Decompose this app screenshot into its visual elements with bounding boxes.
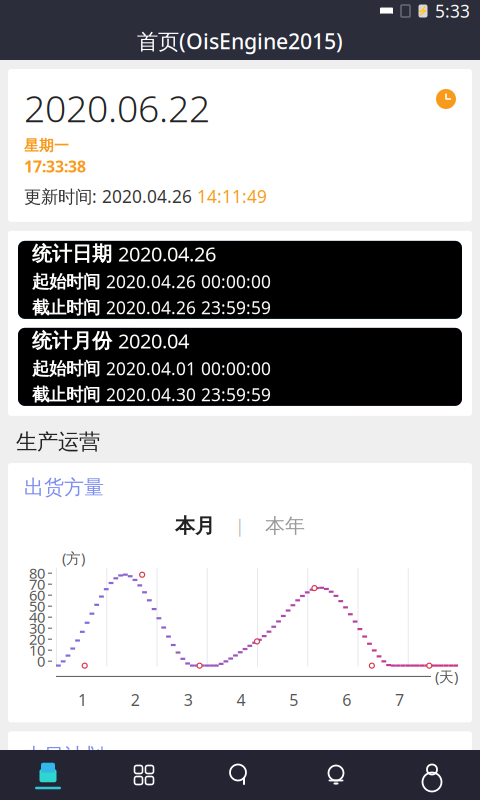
staticText: 统计月份 [32,329,112,353]
staticText: 出货方量 [24,475,104,500]
staticText: 6 [342,689,351,710]
staticText: 首页(OisEngine2015) [137,27,343,55]
button[interactable]: 应用 [96,752,192,798]
staticText: 20 [29,629,45,649]
staticText: (天) [431,667,458,686]
staticText: 4 [236,689,245,710]
staticText: 30 [29,618,45,638]
staticText: 70 [29,574,45,594]
staticText: 1 [78,689,87,710]
staticText: (方) [62,548,85,568]
staticText: 50 [29,596,45,616]
staticText: 80 [29,563,45,583]
staticText: 截止时间 [32,297,100,318]
staticText: 2020.04 [118,328,189,354]
staticText: 60 [29,585,45,605]
staticText: 生产运营 [16,429,100,455]
staticText: 5:33 [435,0,470,22]
staticText: 截止时间 [32,384,100,405]
staticText: 2020.04.26 00:00:00 [106,270,271,293]
staticText: 起始时间 [32,358,100,379]
button[interactable]: 本年 [255,510,315,542]
staticText: 星期一 [24,137,69,155]
staticText: 统计日期 [32,242,112,266]
staticText: 40 [29,607,45,627]
staticText: | [235,514,245,537]
staticText: 本月 [175,514,215,538]
staticText: 2020.04.30 23:59:59 [106,383,271,406]
button[interactable]: 本月 [165,510,225,542]
staticText: 17:33:38 [24,156,86,177]
button[interactable]: 通知 [288,752,384,798]
staticText: 起始时间 [32,271,100,292]
staticText: ⚡ [417,6,429,16]
button[interactable]: 我的 [384,752,480,798]
staticText: 2020.06.22 [24,83,210,133]
button[interactable]: 搜索 [192,752,288,798]
staticText: 2020.04.26 [118,241,216,267]
staticText: 14:11:49 [197,185,267,208]
staticText: 2020.04.01 00:00:00 [106,357,271,380]
staticText: 2 [131,689,140,710]
button[interactable]: 首页 [0,752,96,798]
staticText: 7 [395,689,404,710]
staticText: 2020.04.26 23:59:59 [106,296,271,319]
staticText: 10 [29,640,45,660]
staticText: 0 [37,651,45,671]
staticText: 本日计划 [24,743,104,768]
staticText: 5 [289,689,298,710]
staticText: 3 [184,689,193,710]
staticText: 本年 [265,514,305,538]
staticText: 更新时间: 2020.04.26 [24,185,197,208]
